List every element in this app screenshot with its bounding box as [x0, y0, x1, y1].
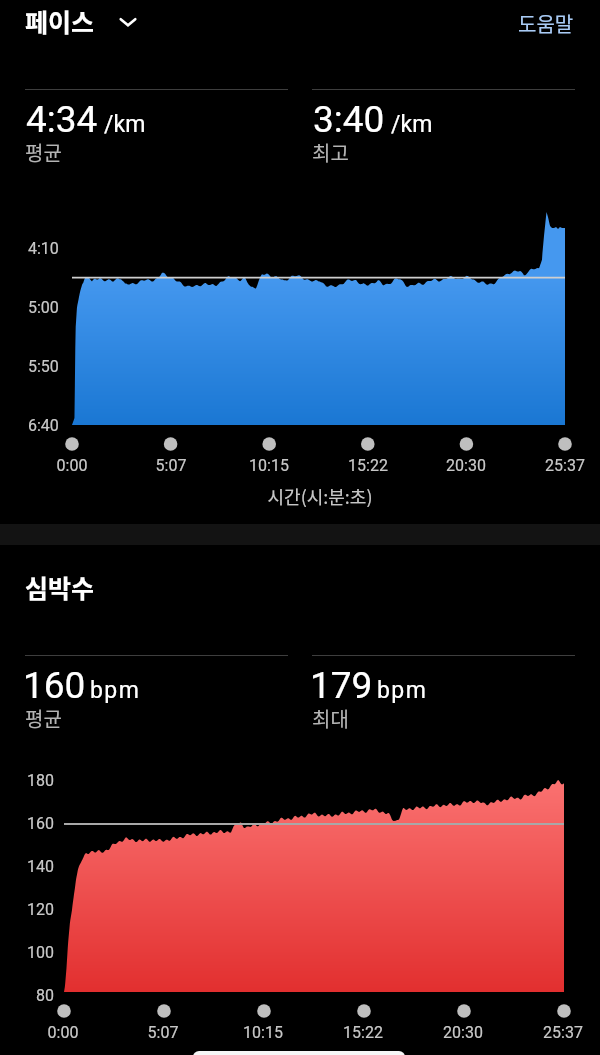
- staticText: 15:22: [343, 456, 393, 478]
- button[interactable]: 도움말: [504, 2, 588, 44]
- staticText: 20:30: [438, 1023, 488, 1045]
- staticText: 25:37: [540, 456, 590, 478]
- staticText: bpm: [90, 677, 141, 704]
- staticText: 도움말: [518, 9, 574, 38]
- staticText: 10:15: [244, 456, 294, 478]
- staticText: 페이스: [25, 3, 95, 39]
- staticText: 평균: [25, 138, 62, 167]
- staticText: 5:07: [138, 1023, 188, 1045]
- staticText: /km: [104, 111, 146, 138]
- staticText: 5:07: [146, 456, 196, 478]
- staticText: 160: [23, 664, 86, 707]
- staticText: bpm: [377, 677, 428, 704]
- staticText: 시간(시:분:초): [230, 483, 410, 507]
- staticText: 4:34: [26, 98, 98, 141]
- staticText: 0:00: [38, 1023, 88, 1045]
- staticText: 15:22: [338, 1023, 388, 1045]
- staticText: 5:00: [28, 298, 68, 318]
- staticText: 140: [14, 857, 54, 877]
- staticText: 4:10: [28, 239, 68, 259]
- staticText: 179: [310, 664, 373, 707]
- staticText: 120: [14, 900, 54, 920]
- staticText: 10:15: [238, 1023, 288, 1045]
- staticText: 최대: [312, 704, 349, 733]
- staticText: 160: [14, 814, 54, 834]
- staticText: 80: [14, 986, 54, 1006]
- staticText: 5:50: [28, 357, 68, 377]
- staticText: 20:30: [441, 456, 491, 478]
- staticText: 180: [14, 771, 54, 791]
- staticText: 평균: [25, 704, 62, 733]
- staticText: 최고: [312, 138, 349, 167]
- staticText: 0:00: [47, 456, 97, 478]
- staticText: 심박수: [25, 569, 95, 605]
- staticText: /km: [391, 111, 433, 138]
- staticText: 6:40: [28, 416, 68, 436]
- button[interactable]: 페이스: [14, 0, 154, 45]
- staticText: 100: [14, 943, 54, 963]
- staticText: 25:37: [538, 1023, 588, 1045]
- staticText: 3:40: [313, 98, 385, 141]
